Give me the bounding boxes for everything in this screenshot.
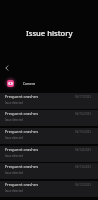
staticText: Frequent crashes — [5, 111, 39, 117]
staticText: 06/12/2023 — [75, 183, 91, 187]
staticText: Issue detected — [5, 101, 23, 105]
staticText: Frequent crashes — [5, 147, 39, 153]
button[interactable]: Frequent crashes — [0, 128, 98, 144]
staticText: Issue history — [26, 28, 73, 38]
staticText: Frequent crashes — [5, 164, 39, 170]
staticText: 06/14/2023 — [75, 148, 91, 152]
button[interactable]: Frequent crashes — [0, 163, 98, 179]
staticText: Issue detected — [5, 171, 23, 175]
button[interactable]: Frequent crashes — [0, 110, 98, 126]
button[interactable]: Frequent crashes — [0, 93, 98, 109]
staticText: 06/16/2023 — [75, 112, 91, 116]
staticText: Frequent crashes — [5, 182, 39, 188]
staticText: Frequent crashes — [5, 94, 39, 100]
staticText: 06/15/2023 — [75, 130, 91, 134]
staticText: Camera — [23, 81, 36, 85]
staticText: Issue detected — [5, 189, 23, 193]
button[interactable]: Back — [1, 62, 13, 74]
staticText: Issue detected — [5, 136, 23, 140]
staticText: Issue detected — [5, 154, 23, 158]
button[interactable]: Camera — [0, 76, 98, 90]
staticText: Issue detected — [5, 118, 23, 122]
button[interactable]: Frequent crashes — [0, 181, 98, 197]
button[interactable]: Frequent crashes — [0, 146, 98, 162]
staticText: 06/17/2023 — [75, 95, 91, 99]
staticText: Frequent crashes — [5, 129, 39, 135]
staticText: 06/13/2023 — [75, 165, 91, 169]
